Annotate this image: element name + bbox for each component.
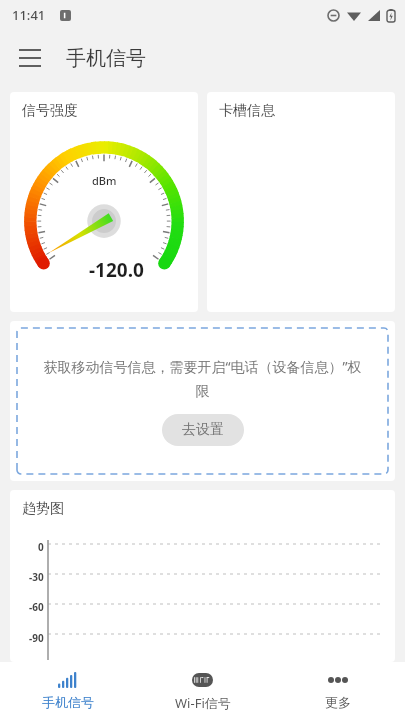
staticText: 卡槽信息 (219, 102, 275, 120)
button[interactable]: 更多 (270, 662, 405, 720)
staticText: 0 (38, 540, 44, 554)
staticText: 获取移动信号信息，需要开启“电话（设备信息）”权限 (39, 357, 366, 400)
staticText: 信号强度 (22, 102, 78, 120)
staticText: 手机信号 (66, 46, 146, 71)
button[interactable]: 去设置 (162, 414, 244, 446)
staticText: -60 (29, 600, 44, 614)
staticText: -120.0 (89, 257, 144, 283)
button[interactable]: 手机信号 (0, 662, 135, 720)
staticText: dBm (92, 173, 117, 188)
staticText: 趋势图 (22, 500, 64, 518)
staticText: Wi-Fi信号 (175, 694, 231, 712)
staticText: -90 (29, 631, 44, 645)
button[interactable]: Menu (10, 38, 50, 78)
staticText: 手机信号 (42, 694, 94, 710)
staticText: -30 (29, 570, 44, 584)
staticText: 11:41 (12, 6, 46, 24)
staticText: 更多 (325, 694, 351, 710)
button[interactable]: Wi-Fi信号 (135, 662, 270, 720)
staticText: 去设置 (182, 421, 224, 439)
